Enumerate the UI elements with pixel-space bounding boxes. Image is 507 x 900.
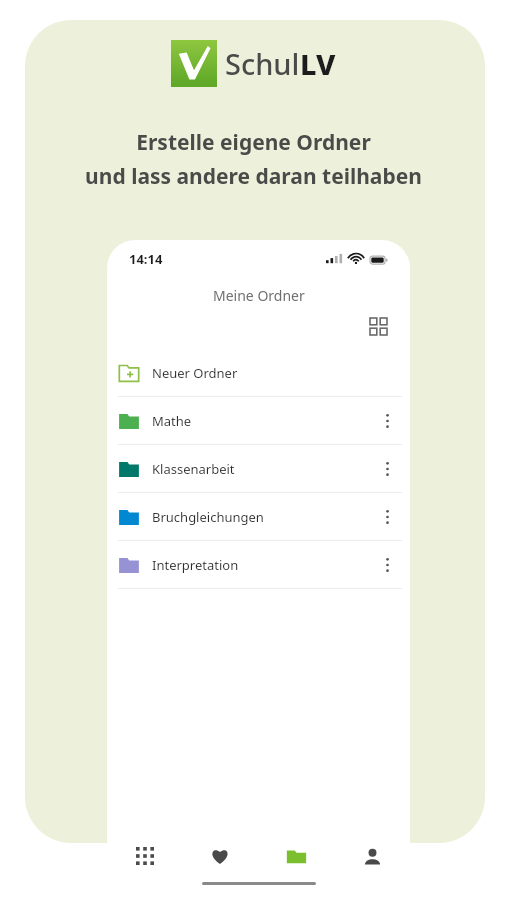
staticText: Erstelle eigene Ordner	[136, 128, 371, 157]
button[interactable]: Ordner	[258, 830, 334, 882]
staticText: Bruchgleichungen	[152, 508, 264, 526]
button[interactable]: Mathe	[107, 397, 410, 444]
button[interactable]: Bruchgleichungen	[107, 493, 410, 540]
button[interactable]: Mehr Optionen	[372, 502, 402, 532]
staticText: Interpretation	[152, 556, 239, 574]
staticText: Mathe	[152, 412, 192, 430]
staticText: Meine Ordner	[213, 286, 305, 305]
button[interactable]: Interpretation	[107, 541, 410, 588]
button[interactable]: Übersicht	[107, 830, 182, 882]
staticText: 14:14	[129, 250, 163, 268]
button[interactable]: Mehr Optionen	[372, 454, 402, 484]
staticText: und lass andere daran teilhaben	[85, 162, 422, 191]
button[interactable]: Profil	[334, 830, 410, 882]
button[interactable]: Klassenarbeit	[107, 445, 410, 492]
staticText: Schul	[225, 44, 300, 83]
staticText: LV	[300, 44, 336, 83]
staticText: Klassenarbeit	[152, 460, 235, 478]
button[interactable]: Mehr Optionen	[372, 406, 402, 436]
button[interactable]: Neuer Ordner	[107, 350, 410, 396]
staticText: Neuer Ordner	[152, 364, 238, 382]
button[interactable]: Favoriten	[182, 830, 258, 882]
button[interactable]: Rasteransicht	[364, 312, 392, 340]
button[interactable]: Mehr Optionen	[372, 550, 402, 580]
